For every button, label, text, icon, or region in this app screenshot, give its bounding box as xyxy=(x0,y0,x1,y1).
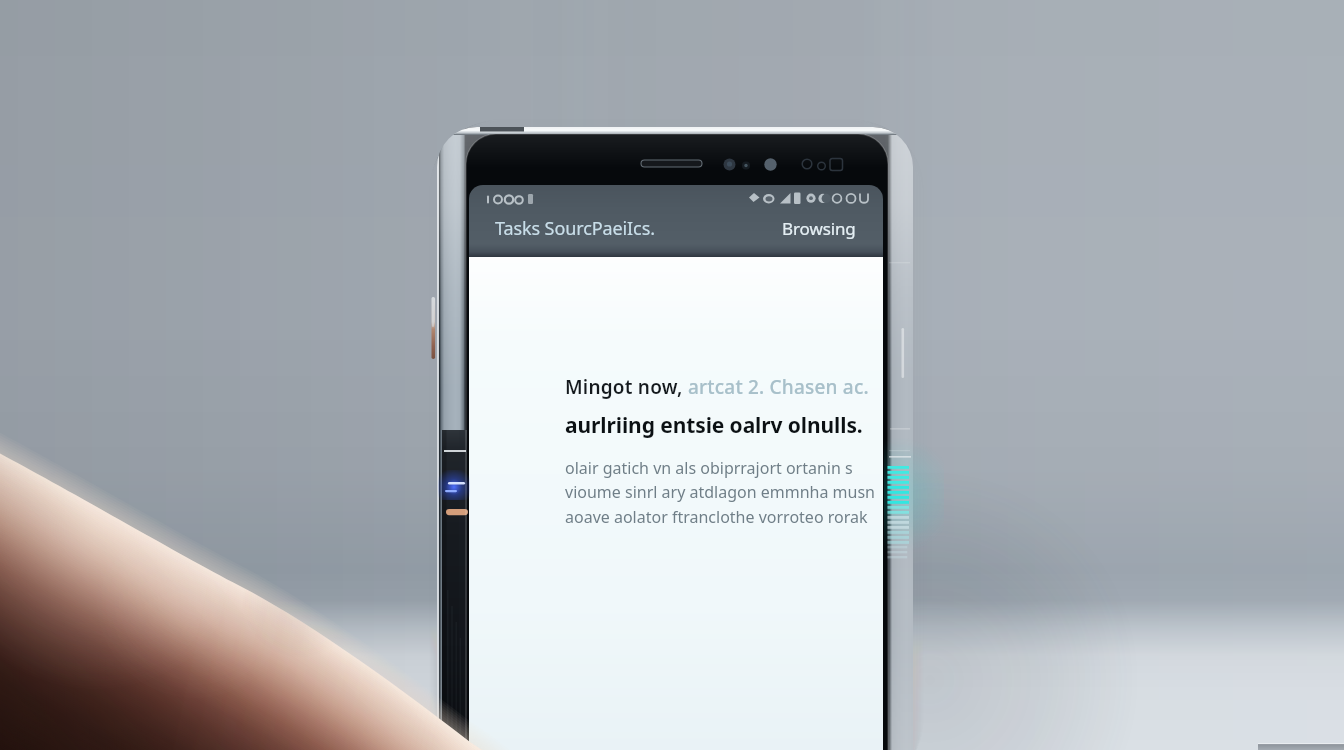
staticText: olair gatich vn als obiprrajort ortanin … xyxy=(565,457,875,528)
button[interactable]: Browsing xyxy=(782,209,883,248)
staticText: Tasks SourcPaeiIcs. xyxy=(495,216,655,241)
staticText: aurlriing entsie oalrv olnulls. xyxy=(565,411,863,440)
staticText: Mingot now, xyxy=(565,374,688,400)
staticText: artcat 2. Chasen ac. xyxy=(688,374,869,400)
staticText: Browsing xyxy=(782,217,856,240)
button[interactable]: Tasks SourcPaeiIcs. xyxy=(469,209,655,248)
